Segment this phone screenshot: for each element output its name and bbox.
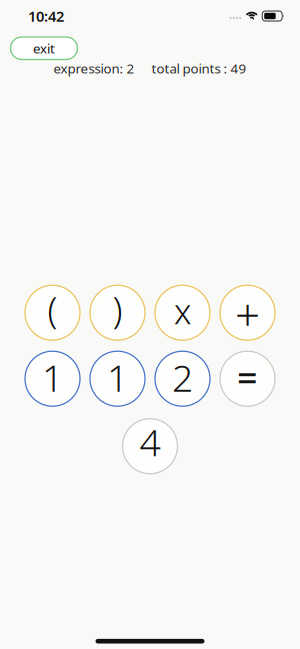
staticText: 1	[42, 352, 63, 402]
button[interactable]: exit	[10, 37, 77, 59]
button[interactable]: 4	[122, 419, 177, 474]
staticText: x	[174, 288, 191, 334]
staticText: expression: 2	[53, 59, 134, 77]
staticText: 2	[172, 352, 193, 402]
staticText: )	[112, 285, 122, 333]
staticText: 10:42	[28, 6, 64, 26]
staticText: 1	[107, 352, 128, 402]
button[interactable]: =	[220, 351, 275, 406]
staticText: (	[47, 285, 57, 333]
button[interactable]: 2	[155, 351, 210, 406]
button[interactable]: 1	[25, 351, 80, 406]
button[interactable]: (	[25, 285, 80, 340]
button[interactable]: 1	[90, 351, 145, 406]
button[interactable]: x	[155, 285, 210, 340]
button[interactable]: +	[220, 285, 275, 340]
staticText: total points : 49	[151, 59, 246, 77]
staticText: +	[235, 284, 260, 343]
button[interactable]: )	[90, 285, 145, 340]
staticText: exit	[33, 39, 55, 57]
staticText: 4	[139, 417, 160, 466]
staticText: =	[237, 353, 258, 401]
